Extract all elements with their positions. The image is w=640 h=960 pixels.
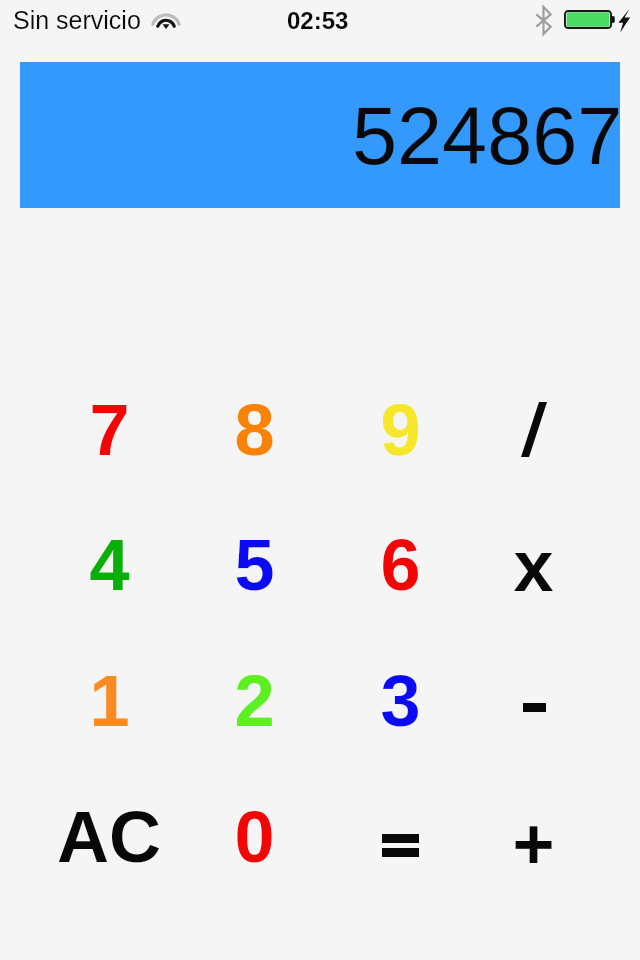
staticText: 6 xyxy=(380,525,421,605)
staticText: 02:53 xyxy=(287,7,349,34)
button[interactable]: seven xyxy=(49,370,169,490)
button[interactable]: six xyxy=(340,505,460,625)
staticText: 4 xyxy=(89,525,130,605)
staticText: 1 xyxy=(89,661,130,741)
staticText: 9 xyxy=(380,390,421,470)
other: Bluetooth xyxy=(536,7,551,34)
staticText: 2 xyxy=(234,661,275,741)
button[interactable]: two xyxy=(194,641,314,761)
button[interactable]: 524867 xyxy=(20,62,620,208)
staticText: Sin servicio xyxy=(13,6,141,34)
button[interactable]: minus xyxy=(473,641,593,761)
staticText: x xyxy=(513,526,554,606)
staticText: 3 xyxy=(380,661,421,741)
other: Battery charging xyxy=(564,10,634,29)
staticText: 0 xyxy=(234,797,275,877)
button[interactable]: all clear xyxy=(49,777,169,897)
button[interactable]: nine xyxy=(340,370,460,490)
button[interactable]: four xyxy=(49,505,169,625)
button[interactable]: eight xyxy=(194,370,314,490)
staticText: 524867 xyxy=(352,91,623,181)
staticText: 8 xyxy=(234,390,275,470)
button[interactable]: divide xyxy=(473,370,593,490)
staticText: 7 xyxy=(89,390,130,470)
button[interactable]: one xyxy=(49,641,169,761)
staticText: AC xyxy=(57,797,161,877)
button[interactable]: three xyxy=(340,641,460,761)
other: Wi-Fi signal xyxy=(152,9,180,29)
button[interactable]: multiply xyxy=(473,505,593,625)
staticText: 5 xyxy=(234,525,275,605)
staticText: + xyxy=(512,804,555,884)
button[interactable]: five xyxy=(194,505,314,625)
button[interactable]: plus xyxy=(473,777,593,897)
button[interactable]: zero xyxy=(194,777,314,897)
button[interactable]: equals xyxy=(340,777,460,897)
